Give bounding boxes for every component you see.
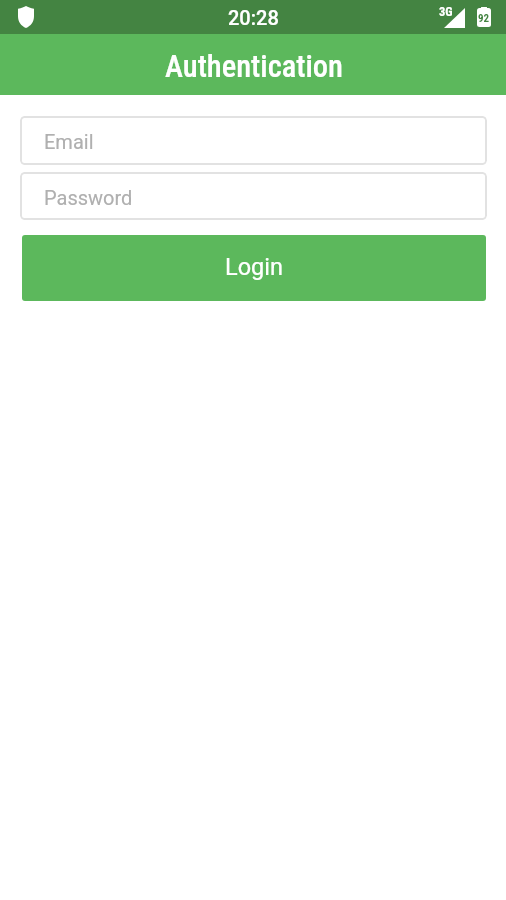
other: Security	[18, 6, 34, 28]
button[interactable]: Email	[20, 116, 487, 165]
other: Signal strength	[444, 8, 465, 28]
other: Battery 92 percent	[477, 7, 491, 27]
button[interactable]: Login	[22, 235, 486, 301]
staticText: Password	[44, 186, 133, 209]
button[interactable]: Password	[20, 172, 487, 220]
staticText: 3G	[439, 4, 453, 19]
staticText: Authentication	[165, 49, 343, 85]
staticText: Email	[44, 130, 94, 153]
staticText: 92	[478, 12, 490, 25]
staticText: Login	[225, 253, 283, 281]
staticText: 20:28	[228, 6, 279, 29]
